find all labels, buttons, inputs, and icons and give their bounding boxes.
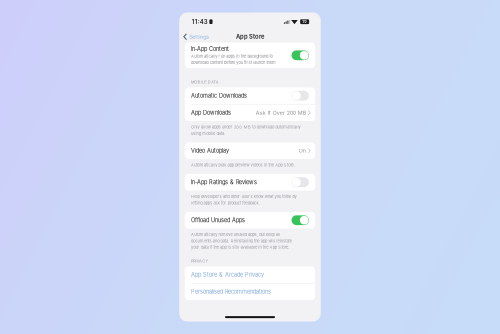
staticText: Automatically run apps in the background… — [191, 54, 273, 59]
button[interactable]: In-App Ratings & Reviews — [185, 174, 315, 190]
staticText: using mobile data. — [191, 131, 225, 136]
staticText: Automatically remove unused apps, but ke… — [191, 232, 280, 237]
staticText: Only allow apps under 200 MB to download… — [191, 125, 300, 129]
button[interactable]: Automatic Downloads — [185, 87, 315, 104]
staticText: 11:43 — [192, 18, 208, 25]
button[interactable]: Settings — [179, 31, 209, 42]
staticText: Video Autoplay — [191, 147, 229, 154]
staticText: letting apps ask for product feedback. — [191, 201, 260, 205]
staticText: download content before you first launch… — [191, 60, 276, 65]
staticText: App Store — [236, 33, 264, 40]
staticText: App Downloads — [191, 109, 231, 116]
button[interactable]: App Store & Arcade Privacy — [185, 266, 315, 283]
staticText: Settings — [189, 33, 209, 40]
staticText: documents and data. Reinstalling the app… — [191, 238, 292, 243]
staticText: Help developers and other users know wha… — [191, 194, 296, 199]
button[interactable]: Offload Unused Apps — [185, 212, 315, 228]
staticText: Automatically play app preview videos in… — [191, 163, 295, 167]
staticText: MOBILE DATA — [191, 80, 219, 84]
staticText: In-App Content — [191, 46, 229, 52]
staticText: 72 — [302, 19, 307, 24]
staticText: Automatic Downloads — [191, 92, 247, 99]
staticText: Offload Unused Apps — [191, 217, 245, 224]
staticText: PRIVACY — [191, 259, 209, 263]
button[interactable]: Personalised Recommendations — [185, 283, 315, 300]
staticText: Personalised Recommendations — [191, 288, 271, 295]
staticText: In-App Ratings & Reviews — [191, 179, 257, 186]
button[interactable]: App Downloads — [185, 104, 315, 121]
button[interactable]: Video Autoplay — [185, 142, 315, 159]
staticText: Ask If Over 200 MB — [256, 109, 306, 116]
staticText: your data if the app is still available … — [191, 245, 289, 250]
staticText: On — [299, 147, 306, 154]
staticText: App Store & Arcade Privacy — [191, 271, 264, 278]
button[interactable]: In-App Content — [185, 42, 315, 68]
